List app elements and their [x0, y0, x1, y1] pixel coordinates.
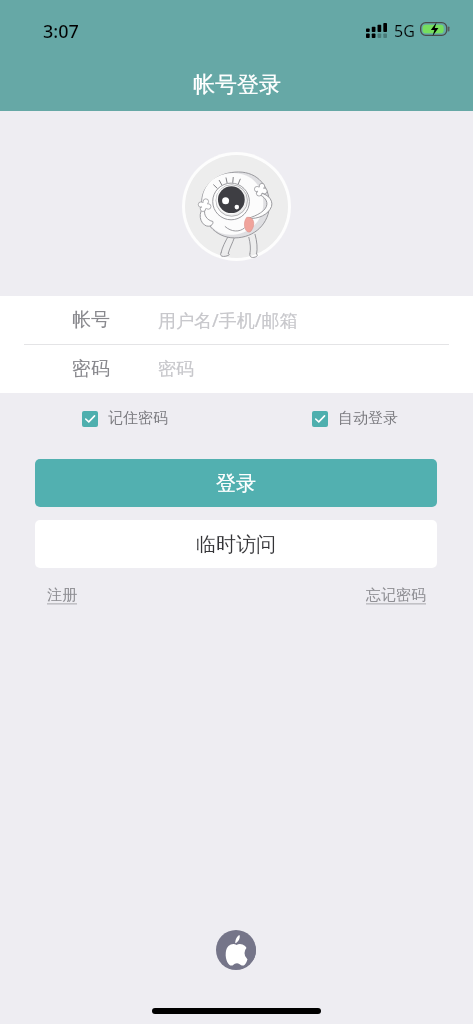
staticText: 自动登录: [338, 409, 398, 428]
staticText: 帐号: [72, 308, 110, 332]
staticText: 3:07: [43, 19, 79, 44]
button[interactable]: 记住密码: [82, 409, 168, 428]
staticText: 密码: [72, 357, 110, 381]
staticText: 注册: [47, 586, 77, 605]
button[interactable]: Apple sign in: [216, 930, 256, 970]
button[interactable]: 密码: [0, 345, 473, 393]
button[interactable]: 自动登录: [312, 409, 398, 428]
staticText: 帐号登录: [193, 71, 281, 99]
staticText: 5G: [394, 20, 415, 42]
staticText: 用户名/手机/邮箱: [158, 308, 298, 333]
staticText: 记住密码: [108, 409, 168, 428]
button[interactable]: 注册: [47, 586, 77, 605]
staticText: 忘记密码: [366, 586, 426, 605]
button[interactable]: 临时访问: [35, 520, 437, 568]
staticText: 登录: [216, 471, 256, 496]
button[interactable]: 登录: [35, 459, 437, 507]
staticText: 临时访问: [196, 532, 276, 557]
button[interactable]: 帐号: [0, 296, 473, 344]
button[interactable]: 忘记密码: [366, 586, 426, 605]
staticText: 密码: [158, 358, 194, 381]
